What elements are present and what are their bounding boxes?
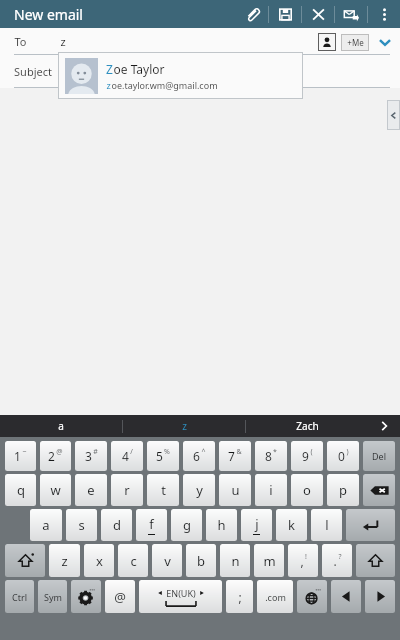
button[interactable]: Shift — [5, 544, 45, 577]
button[interactable]: Del — [363, 441, 395, 471]
staticText: . — [333, 553, 337, 569]
button[interactable]: u — [219, 474, 251, 506]
button[interactable]: 4 — [111, 441, 143, 471]
staticText: a — [58, 419, 64, 433]
button[interactable]: . — [322, 544, 352, 577]
button[interactable]: Sym — [38, 580, 67, 613]
button[interactable]: Settings — [71, 580, 101, 613]
staticText: t — [161, 481, 166, 499]
button[interactable]: a — [30, 509, 62, 541]
button[interactable]: +Me — [341, 34, 369, 51]
button[interactable]: z — [123, 415, 245, 437]
button[interactable]: s — [66, 509, 97, 541]
button[interactable]: 5 — [147, 441, 179, 471]
button[interactable]: Move right — [365, 580, 395, 613]
button[interactable]: v — [152, 544, 182, 577]
staticText: Subject — [14, 64, 52, 79]
staticText: b — [197, 552, 205, 570]
button[interactable]: 0 — [327, 441, 359, 471]
staticText: n — [231, 552, 240, 570]
button[interactable]: Open panel — [387, 100, 400, 130]
staticText: ? — [338, 552, 342, 562]
button[interactable]: ; — [226, 580, 253, 613]
button[interactable]: Z — [58, 52, 303, 99]
button[interactable]: q — [5, 474, 36, 506]
staticText: u — [231, 481, 240, 499]
staticText: , — [300, 553, 304, 569]
staticText: ) — [346, 447, 349, 457]
button[interactable]: t — [147, 474, 179, 506]
button[interactable]: Move left — [331, 580, 361, 613]
staticText: ~ — [22, 447, 27, 457]
button[interactable]: 9 — [291, 441, 323, 471]
button[interactable]: x — [84, 544, 114, 577]
button[interactable]: l — [311, 509, 342, 541]
button[interactable]: Expand recipient fields — [376, 33, 394, 51]
button[interactable]: j — [241, 509, 272, 541]
button[interactable]: More suggestions — [368, 415, 400, 437]
button[interactable]: , — [288, 544, 318, 577]
button[interactable]: Enter — [346, 509, 395, 541]
button[interactable]: Backspace — [363, 474, 395, 506]
staticText: 5 — [156, 448, 163, 464]
button[interactable]: Change language — [297, 580, 327, 613]
button[interactable]: Shift — [356, 544, 395, 577]
staticText: To — [14, 34, 27, 49]
button[interactable]: 3 — [75, 441, 107, 471]
button[interactable]: Save draft — [269, 0, 301, 28]
staticText: EN(UK) — [166, 587, 196, 599]
staticText: w — [50, 481, 61, 499]
button[interactable]: w — [40, 474, 71, 506]
button[interactable]: 2 — [40, 441, 71, 471]
button[interactable]: Space — [139, 580, 222, 613]
staticText: g — [183, 516, 191, 534]
button[interactable]: a — [0, 415, 122, 437]
button[interactable]: z — [49, 544, 80, 577]
button[interactable]: @ — [105, 580, 135, 613]
staticText: 1 — [14, 448, 21, 464]
staticText: / — [130, 447, 133, 457]
staticText: d — [113, 516, 121, 534]
staticText: ; — [238, 589, 242, 605]
button[interactable]: n — [220, 544, 250, 577]
staticText: v — [164, 552, 171, 570]
staticText: e — [87, 481, 95, 499]
button[interactable]: b — [186, 544, 216, 577]
staticText: o — [303, 481, 311, 499]
staticText: j — [255, 515, 259, 533]
staticText: Zach — [296, 419, 319, 433]
button[interactable]: 7 — [219, 441, 251, 471]
button[interactable]: r — [111, 474, 143, 506]
button[interactable]: Pick contact — [318, 33, 336, 51]
staticText: @ — [56, 447, 63, 457]
button[interactable]: p — [327, 474, 359, 506]
button[interactable]: y — [183, 474, 215, 506]
button[interactable]: m — [254, 544, 284, 577]
button[interactable]: .com — [257, 580, 293, 613]
button[interactable]: 8 — [255, 441, 287, 471]
staticText: i — [269, 481, 273, 499]
staticText: f — [149, 515, 154, 533]
button[interactable]: g — [171, 509, 202, 541]
staticText: 4 — [122, 448, 129, 464]
button[interactable]: 6 — [183, 441, 215, 471]
button[interactable]: d — [101, 509, 132, 541]
button[interactable]: Discard — [302, 0, 334, 28]
staticText: & — [236, 447, 242, 457]
staticText: ^ — [201, 447, 206, 457]
button[interactable]: 1 — [5, 441, 36, 471]
button[interactable]: f — [136, 509, 167, 541]
button[interactable]: Send — [335, 0, 367, 28]
button[interactable]: i — [255, 474, 287, 506]
button[interactable]: Ctrl — [5, 580, 34, 613]
staticText: 6 — [193, 448, 200, 464]
button[interactable]: Attach — [236, 0, 268, 28]
staticText: h — [217, 516, 226, 534]
button[interactable]: o — [291, 474, 323, 506]
button[interactable]: e — [75, 474, 107, 506]
button[interactable]: More options — [368, 0, 400, 28]
button[interactable]: c — [118, 544, 148, 577]
button[interactable]: k — [276, 509, 307, 541]
button[interactable]: h — [206, 509, 237, 541]
button[interactable]: Zach — [246, 415, 368, 437]
